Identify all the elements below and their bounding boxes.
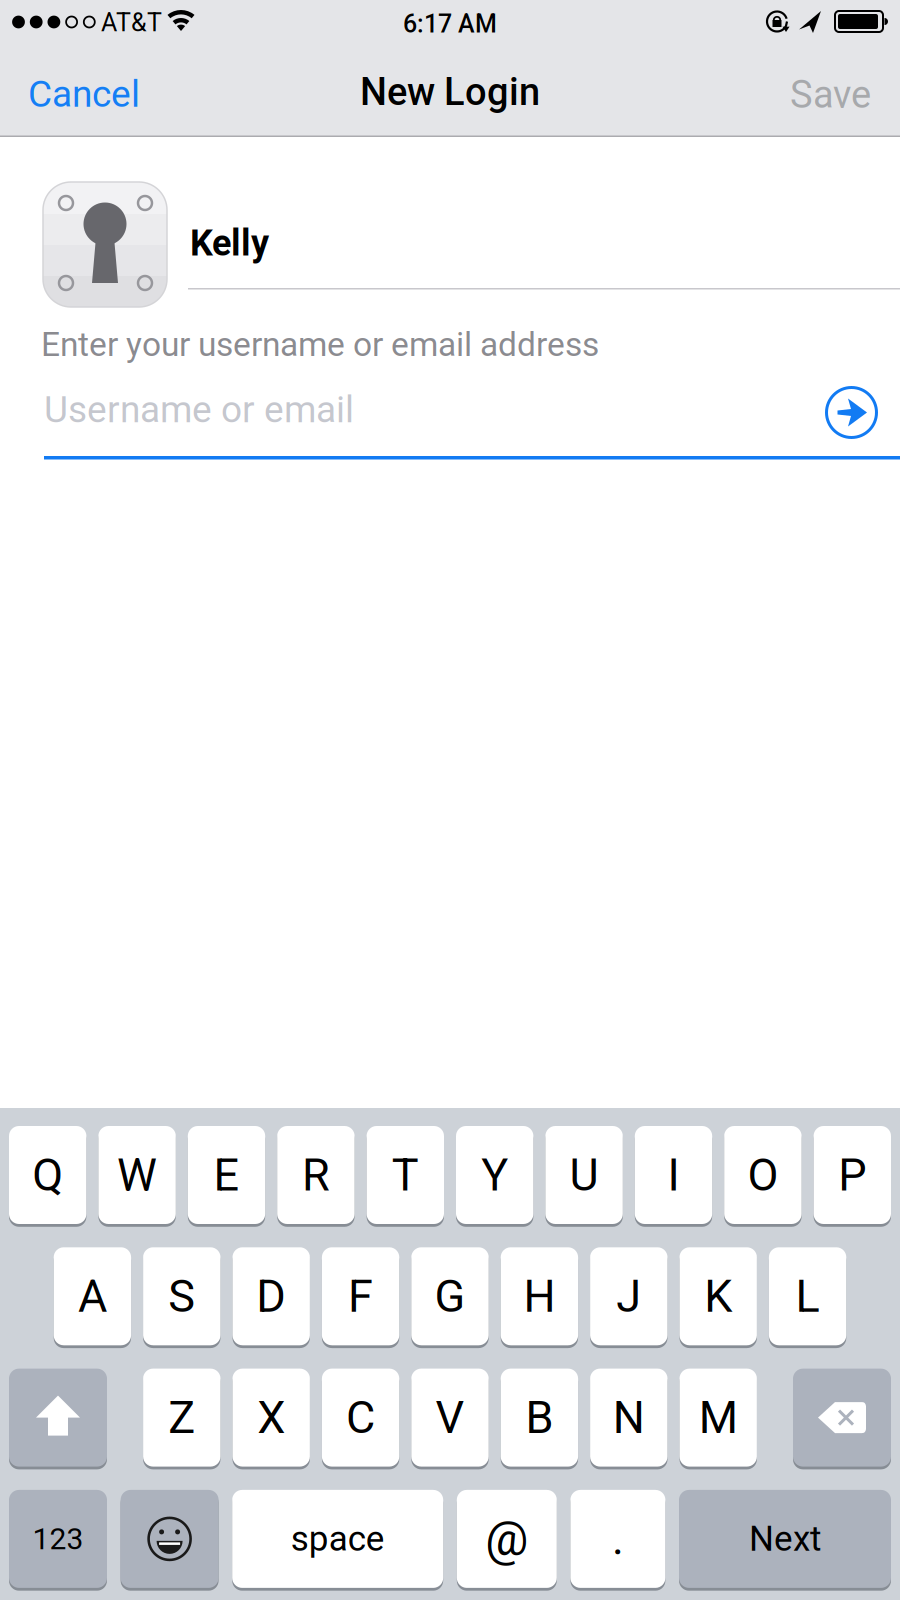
button[interactable]: F <box>322 1247 399 1345</box>
staticText: Next <box>749 1518 821 1559</box>
button[interactable]: Z <box>143 1369 220 1467</box>
button[interactable]: E <box>188 1126 265 1224</box>
staticText: H <box>523 1270 555 1323</box>
staticText: R <box>302 1149 330 1201</box>
button[interactable]: N <box>590 1369 667 1467</box>
button[interactable]: U <box>545 1126 623 1224</box>
staticText: U <box>570 1149 599 1201</box>
staticText: J <box>616 1270 641 1323</box>
button[interactable]: Shift <box>9 1369 107 1467</box>
staticText: P <box>838 1149 866 1201</box>
staticText: T <box>392 1149 419 1201</box>
staticText: G <box>434 1270 465 1323</box>
button[interactable]: Username or email <box>44 388 354 431</box>
staticText: New Login <box>360 70 540 114</box>
button[interactable]: C <box>322 1369 399 1467</box>
button[interactable]: J <box>590 1247 667 1345</box>
staticText: . <box>612 1512 624 1565</box>
staticText: Save <box>790 72 871 117</box>
staticText: V <box>435 1391 464 1444</box>
button[interactable]: L <box>769 1247 846 1345</box>
button[interactable]: Delete <box>793 1369 891 1467</box>
staticText: Q <box>32 1149 63 1201</box>
staticText: L <box>796 1270 820 1323</box>
button[interactable]: space <box>232 1490 443 1588</box>
button[interactable]: V <box>411 1369 489 1467</box>
staticText: Cancel <box>28 72 140 116</box>
button[interactable]: P <box>814 1126 891 1224</box>
button[interactable]: Y <box>456 1126 533 1224</box>
button[interactable]: I <box>635 1126 712 1224</box>
button[interactable]: Kelly <box>190 222 269 264</box>
button[interactable]: K <box>679 1247 757 1345</box>
staticText: B <box>525 1391 553 1444</box>
staticText: 123 <box>32 1521 83 1556</box>
staticText: space <box>291 1518 385 1559</box>
staticText: E <box>213 1149 239 1201</box>
button[interactable]: Emoji <box>121 1490 219 1588</box>
staticText: D <box>256 1270 286 1323</box>
staticText: 6:17 AM <box>403 9 497 39</box>
staticText: Z <box>168 1391 195 1444</box>
staticText: K <box>704 1270 732 1323</box>
button[interactable]: R <box>277 1126 355 1224</box>
staticText: O <box>747 1149 778 1201</box>
button[interactable]: S <box>143 1247 220 1345</box>
staticText: N <box>613 1391 645 1444</box>
staticText: AT&T <box>101 8 162 37</box>
button[interactable]: Q <box>9 1126 86 1224</box>
button[interactable]: D <box>232 1247 310 1345</box>
button[interactable]: Save <box>790 72 871 117</box>
button[interactable]: G <box>411 1247 489 1345</box>
staticText: Kelly <box>190 222 269 264</box>
staticText: Username or email <box>44 388 354 431</box>
staticText: @ <box>485 1511 528 1567</box>
staticText: M <box>699 1391 738 1444</box>
button[interactable]: @ <box>457 1490 557 1588</box>
button[interactable]: . <box>570 1490 665 1588</box>
button[interactable]: M <box>679 1369 757 1467</box>
button[interactable]: Next <box>679 1490 891 1588</box>
button[interactable]: Go <box>825 386 878 439</box>
button[interactable]: H <box>501 1247 578 1345</box>
button[interactable]: B <box>501 1369 578 1467</box>
button[interactable]: O <box>724 1126 802 1224</box>
staticText: F <box>348 1270 373 1323</box>
staticText: W <box>117 1149 157 1201</box>
staticText: Enter your username or email address <box>41 325 599 364</box>
staticText: I <box>667 1149 679 1201</box>
button[interactable]: W <box>98 1126 176 1224</box>
staticText: C <box>346 1391 375 1444</box>
staticText: X <box>257 1391 285 1444</box>
button[interactable]: Cancel <box>28 72 140 116</box>
button[interactable]: 123 <box>9 1490 107 1588</box>
staticText: S <box>168 1270 195 1323</box>
staticText: Y <box>481 1149 508 1201</box>
staticText: A <box>78 1270 107 1323</box>
button[interactable]: A <box>54 1247 131 1345</box>
button[interactable]: T <box>367 1126 444 1224</box>
button[interactable]: X <box>232 1369 310 1467</box>
